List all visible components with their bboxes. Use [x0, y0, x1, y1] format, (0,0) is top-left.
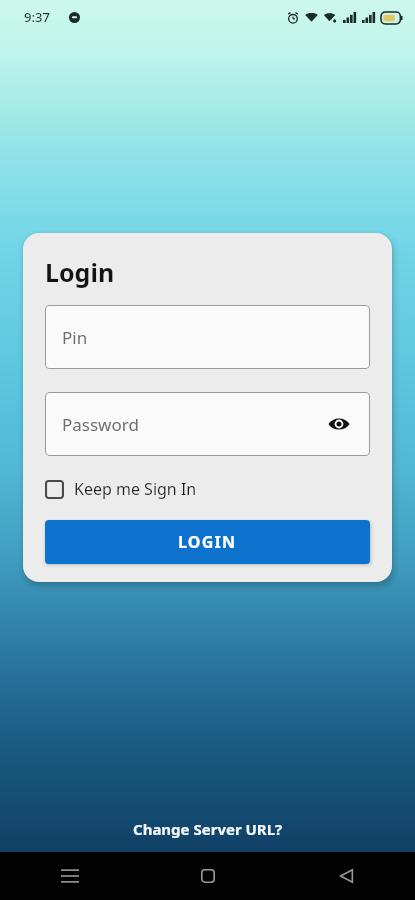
staticText: Keep me Sign In: [74, 478, 197, 500]
button[interactable]: Recent apps: [0, 852, 139, 900]
button[interactable]: Change Server URL?: [125, 816, 291, 842]
staticText: Pin: [62, 326, 88, 349]
staticText: Login: [45, 255, 115, 289]
button[interactable]: Home: [139, 852, 277, 900]
button[interactable]: Show password: [322, 407, 356, 441]
staticText: 9:37: [24, 8, 50, 26]
button[interactable]: LOGIN: [45, 520, 370, 564]
staticText: Change Server URL?: [133, 819, 283, 839]
staticText: LOGIN: [178, 531, 237, 553]
staticText: Password: [62, 413, 139, 436]
button[interactable]: Back: [277, 852, 415, 900]
button[interactable]: Pin: [45, 305, 370, 369]
button[interactable]: Keep me Sign In: [45, 476, 203, 502]
button[interactable]: Password: [45, 392, 370, 456]
